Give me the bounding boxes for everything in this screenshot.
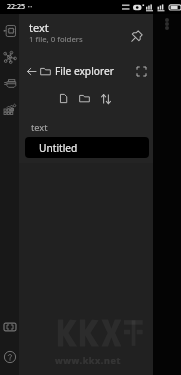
- staticText: File explorer: [55, 64, 114, 78]
- button[interactable]: New folder: [76, 90, 93, 107]
- button[interactable]: Help: [0, 347, 19, 366]
- staticText: 22:25: [7, 2, 25, 12]
- button[interactable]: New file: [55, 90, 72, 107]
- staticText: text: [29, 20, 49, 35]
- staticText: www.kkx.net: [55, 354, 121, 366]
- button[interactable]: Untitled: [25, 137, 149, 158]
- button[interactable]: Tools: [0, 73, 19, 92]
- staticText: Untitled: [39, 141, 78, 155]
- button[interactable]: Documents: [0, 21, 19, 40]
- button[interactable]: More options: [159, 16, 175, 32]
- button[interactable]: Expand: [133, 63, 149, 79]
- button[interactable]: Apps: [0, 99, 19, 118]
- button[interactable]: Sort: [97, 90, 114, 107]
- button[interactable]: Pin: [128, 28, 145, 45]
- button[interactable]: Back: [23, 63, 39, 79]
- button[interactable]: Network: [0, 47, 19, 66]
- button[interactable]: Screenshot: [0, 317, 19, 336]
- staticText: 1 file, 0 folders: [29, 34, 83, 45]
- staticText: text: [31, 121, 48, 134]
